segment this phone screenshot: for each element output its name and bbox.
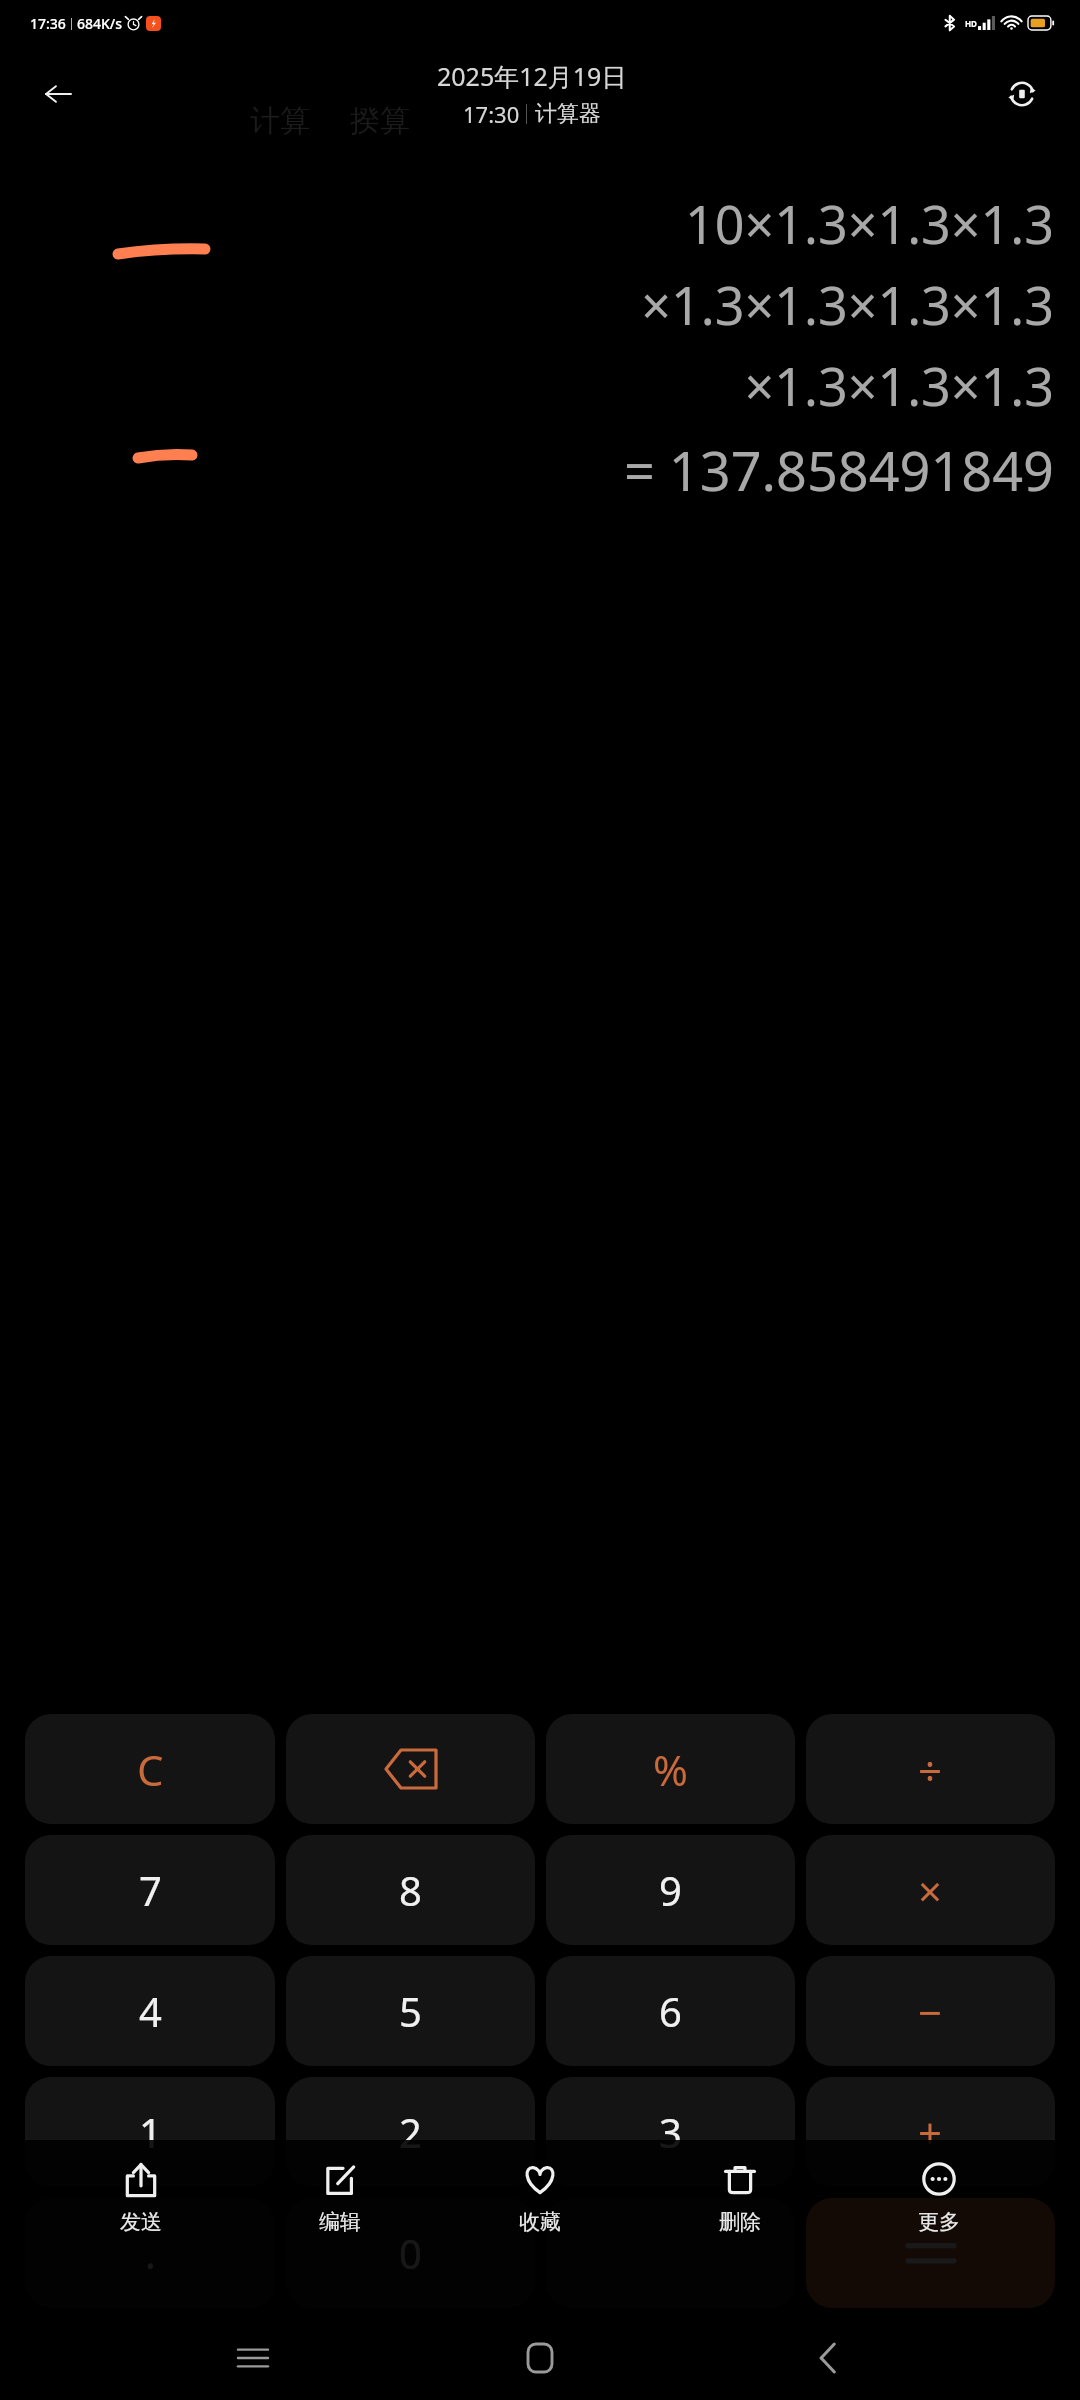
button[interactable]: 收藏 bbox=[481, 2154, 599, 2241]
staticText: . bbox=[145, 2226, 156, 2280]
button[interactable]: 6 bbox=[546, 1956, 795, 2066]
staticText: 9 bbox=[659, 1863, 682, 1917]
staticText: 2025年12月19日 bbox=[437, 59, 627, 93]
staticText: 4 bbox=[139, 1984, 162, 2038]
staticText: % bbox=[653, 1741, 688, 1798]
button[interactable]: − bbox=[806, 1956, 1055, 2066]
button[interactable]: 更多 bbox=[880, 2154, 998, 2241]
staticText: 684K/s bbox=[77, 14, 123, 33]
staticText: ×1.3×1.3×1.3 bbox=[744, 350, 1054, 421]
staticText: 揆算 bbox=[350, 102, 410, 140]
staticText: − bbox=[918, 1983, 943, 2040]
button[interactable]: + bbox=[806, 2077, 1055, 2187]
button[interactable]: ÷ bbox=[806, 1714, 1055, 1824]
staticText: 17:36 bbox=[30, 14, 66, 33]
staticText: C bbox=[137, 1741, 164, 1798]
staticText: 7 bbox=[139, 1863, 162, 1917]
staticText: 发送 bbox=[120, 2209, 162, 2235]
button[interactable]: 发送 bbox=[82, 2154, 200, 2241]
button[interactable]: Back bbox=[793, 2323, 863, 2393]
staticText: 6 bbox=[659, 1984, 682, 2038]
staticText: 删除 bbox=[719, 2209, 761, 2235]
staticText: 计算器 bbox=[535, 100, 601, 128]
staticText: ÷ bbox=[918, 1741, 943, 1798]
staticText: 计算 bbox=[250, 102, 310, 140]
staticText: 1 bbox=[139, 2105, 162, 2159]
staticText: 编辑 bbox=[319, 2209, 361, 2235]
staticText: HD bbox=[965, 18, 977, 29]
button[interactable]: Home bbox=[505, 2323, 575, 2393]
staticText: 8 bbox=[399, 1863, 422, 1917]
staticText: 2 bbox=[399, 2105, 422, 2159]
staticText: 更多 bbox=[918, 2209, 960, 2235]
button[interactable] bbox=[806, 2198, 1055, 2308]
button[interactable]: × bbox=[806, 1835, 1055, 1945]
staticText: 10×1.3×1.3×1.3 bbox=[685, 188, 1054, 259]
button[interactable]: 4 bbox=[25, 1956, 275, 2066]
button[interactable]: Rotate screenshot bbox=[996, 68, 1048, 120]
button[interactable]: 0 bbox=[286, 2198, 535, 2308]
staticText: = 137.858491849 bbox=[623, 433, 1054, 507]
staticText: × bbox=[918, 1862, 943, 1919]
button[interactable]: 2 bbox=[286, 2077, 535, 2187]
staticText: 5 bbox=[399, 1984, 422, 2038]
staticText: 收藏 bbox=[519, 2209, 561, 2235]
button[interactable]: Clear bbox=[25, 1714, 275, 1824]
staticText: 17:30 bbox=[463, 99, 520, 129]
button[interactable]: 8 bbox=[286, 1835, 535, 1945]
button[interactable]: 3 bbox=[546, 2077, 795, 2187]
button[interactable]: Back bbox=[30, 66, 86, 122]
button[interactable]: % bbox=[546, 1714, 795, 1824]
button[interactable]: 9 bbox=[546, 1835, 795, 1945]
staticText: 0 bbox=[399, 2226, 422, 2280]
button[interactable]: 1 bbox=[25, 2077, 275, 2187]
button[interactable]: Recents bbox=[218, 2323, 288, 2393]
staticText: ×1.3×1.3×1.3×1.3 bbox=[641, 269, 1054, 340]
button[interactable]: . bbox=[25, 2198, 275, 2308]
button[interactable]: 编辑 bbox=[281, 2154, 399, 2241]
button[interactable]: Backspace bbox=[286, 1714, 535, 1824]
button[interactable] bbox=[546, 2198, 795, 2308]
staticText: + bbox=[918, 2104, 943, 2161]
button[interactable]: 7 bbox=[25, 1835, 275, 1945]
button[interactable]: 删除 bbox=[681, 2154, 799, 2241]
staticText: 3 bbox=[659, 2105, 682, 2159]
button[interactable]: 5 bbox=[286, 1956, 535, 2066]
